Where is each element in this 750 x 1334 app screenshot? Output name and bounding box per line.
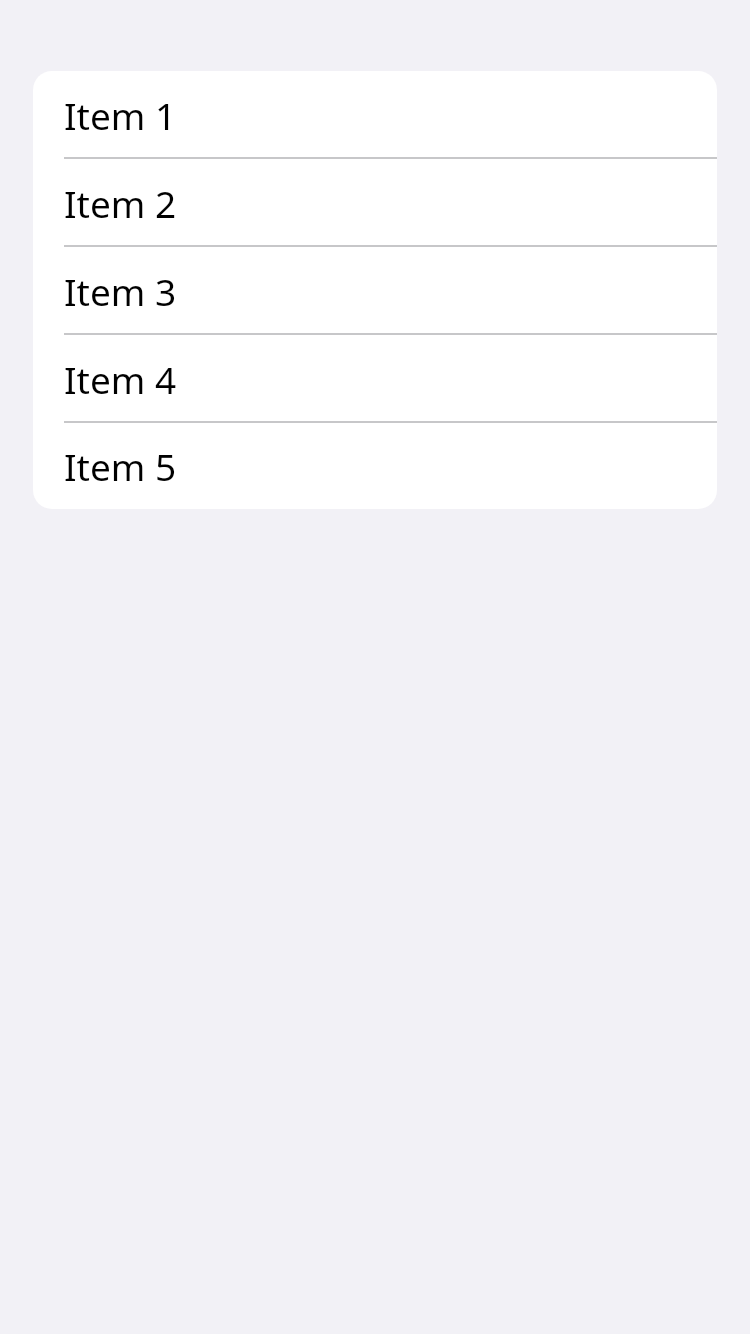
staticText: Item 2 (64, 178, 177, 228)
button[interactable]: Item 1 (33, 71, 717, 159)
button[interactable]: Item 4 (33, 335, 717, 423)
staticText: Item 5 (64, 441, 177, 491)
button[interactable]: Item 3 (33, 247, 717, 335)
button[interactable]: Item 5 (33, 423, 717, 509)
staticText: Item 1 (64, 90, 177, 140)
button[interactable]: Item 2 (33, 159, 717, 247)
staticText: Item 4 (64, 354, 177, 404)
staticText: Item 3 (64, 266, 177, 316)
